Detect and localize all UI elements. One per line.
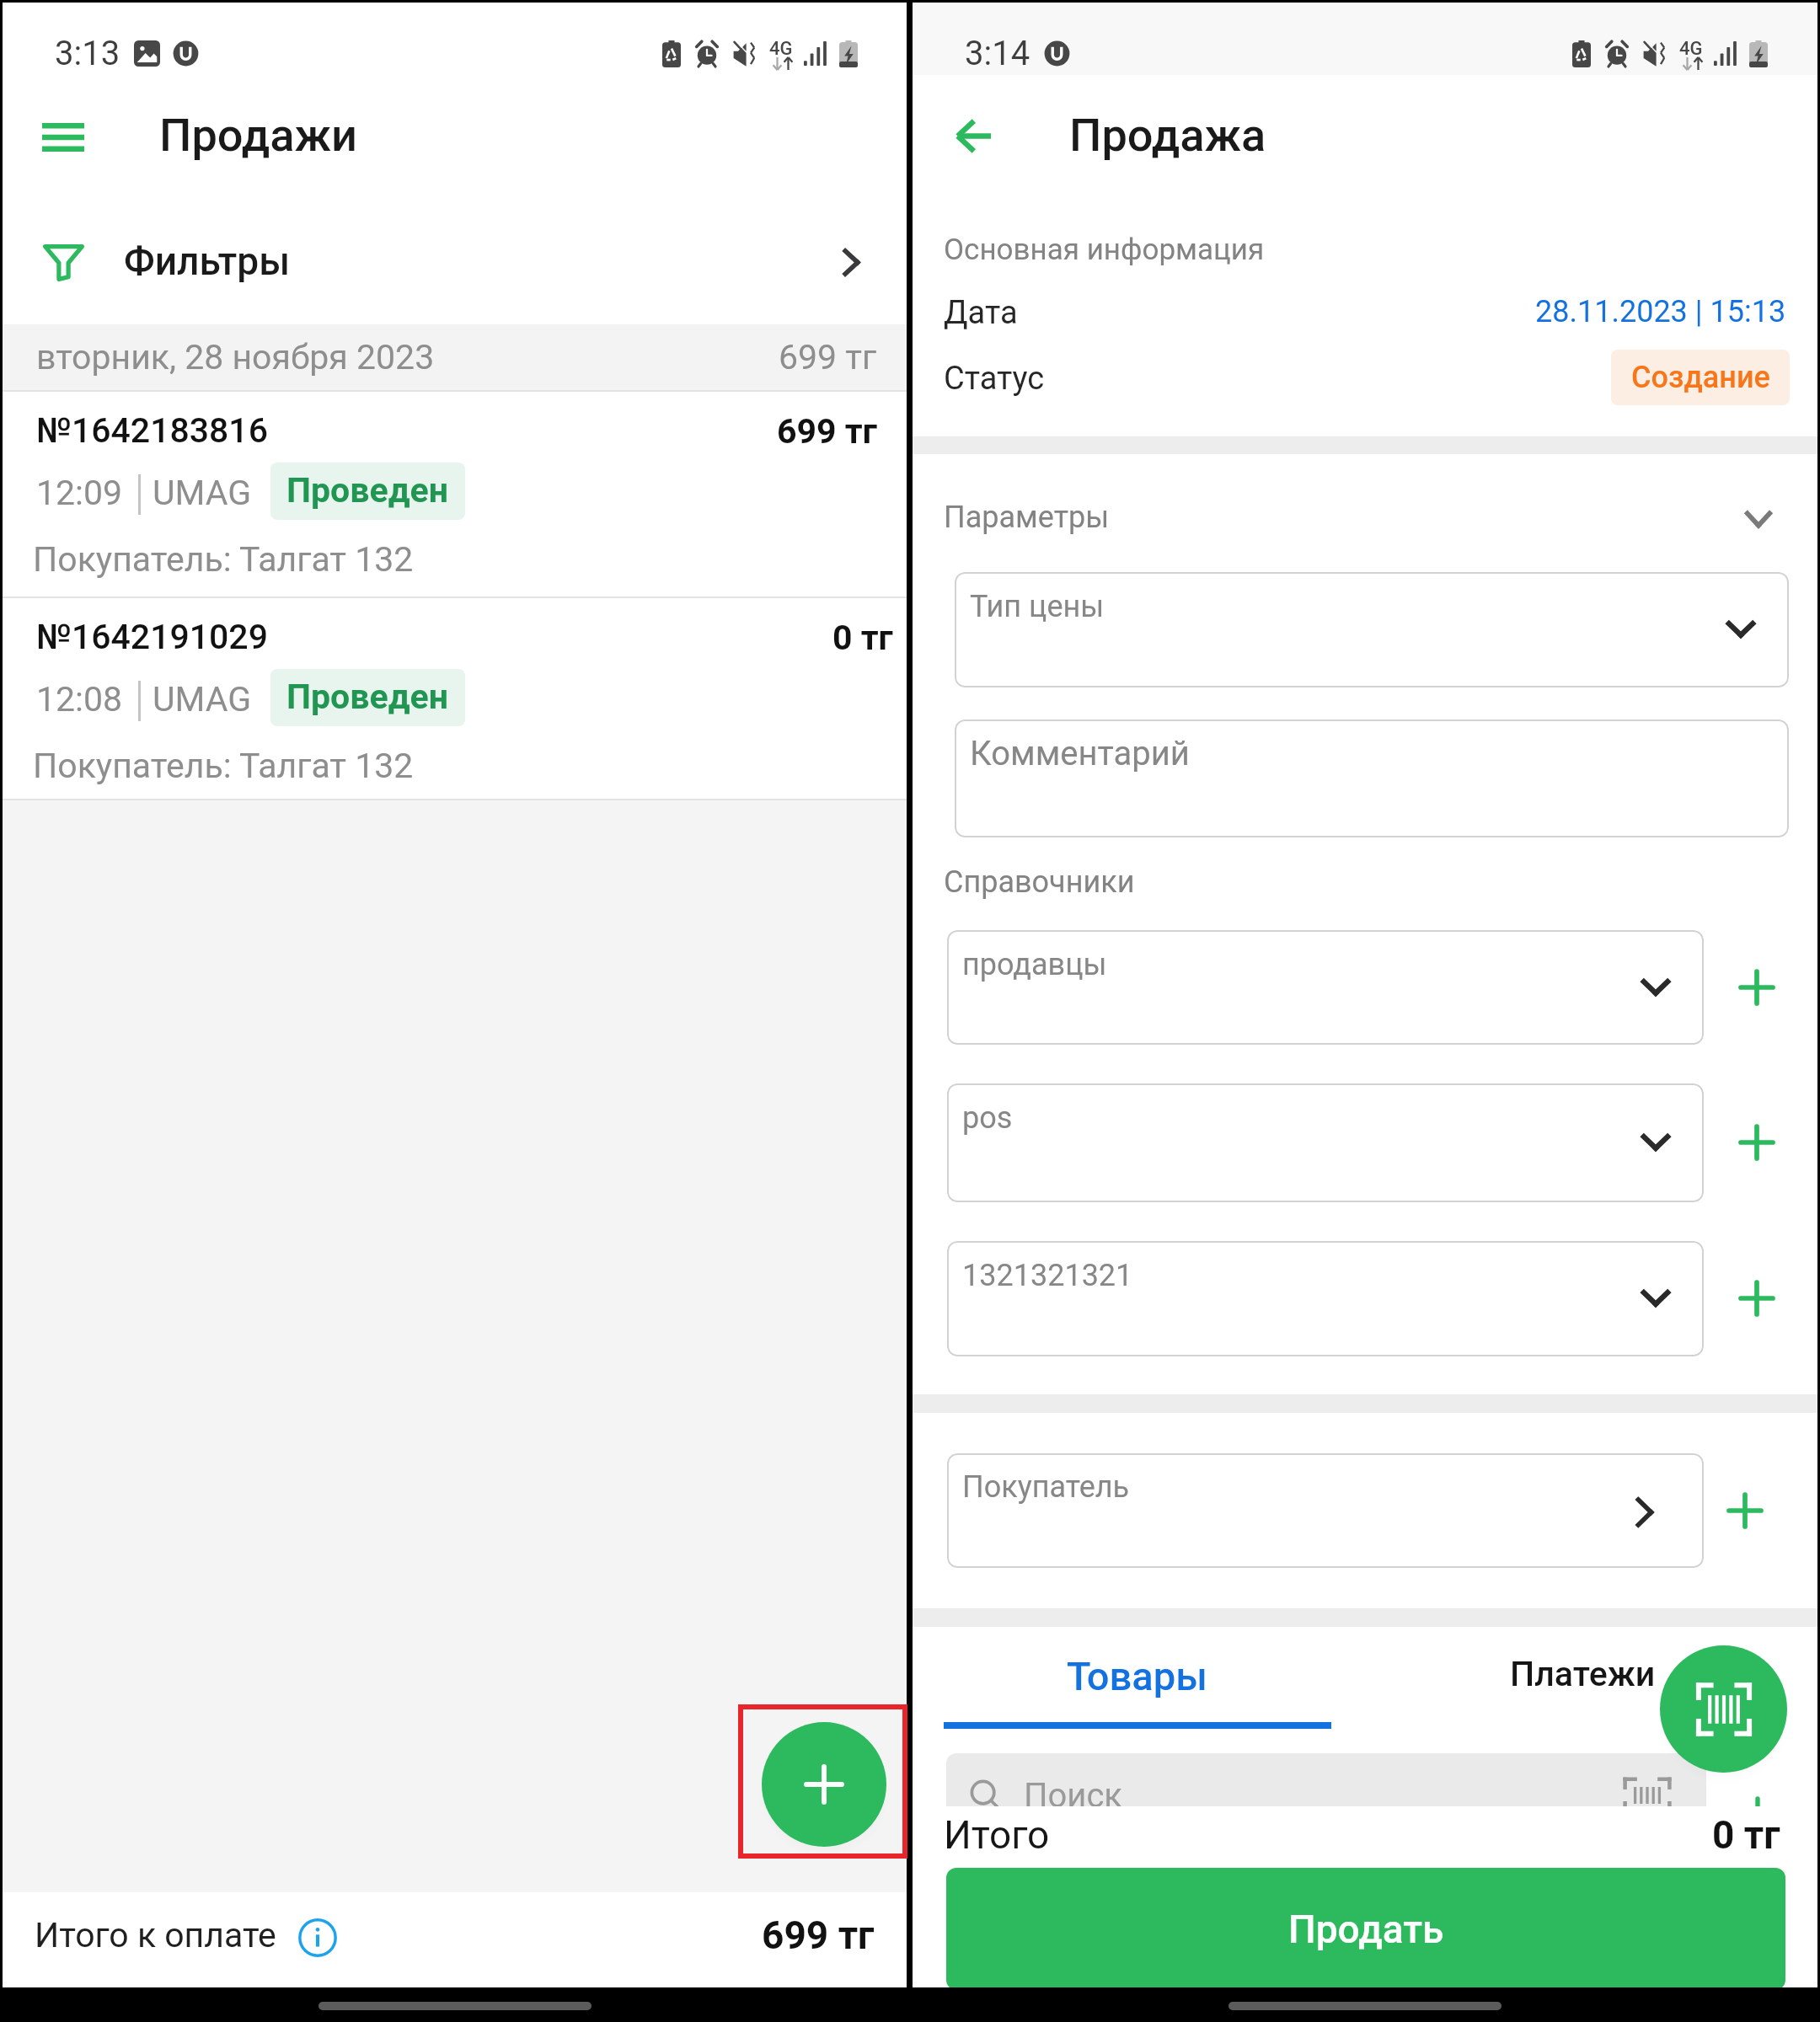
staticText: Параметры bbox=[944, 500, 1110, 535]
button[interactable]: Комментарий bbox=[955, 719, 1789, 837]
button[interactable]: Add bbox=[1737, 1278, 1777, 1319]
button[interactable]: Товары bbox=[913, 1629, 1365, 1725]
staticText: pos bbox=[962, 1100, 1013, 1136]
button[interactable]: Back bbox=[927, 89, 1020, 182]
button[interactable]: Scan barcode bbox=[1660, 1645, 1787, 1773]
staticText: Покупатель: Талгат 132 bbox=[33, 746, 414, 786]
staticText: Продажа bbox=[1069, 109, 1266, 162]
staticText: Тип цены bbox=[970, 589, 1105, 624]
button[interactable]: Menu bbox=[21, 95, 105, 179]
button[interactable]: Платежи bbox=[1365, 1629, 1817, 1725]
staticText: 699 тг bbox=[779, 337, 877, 377]
staticText: 12:08 bbox=[36, 679, 123, 719]
button[interactable]: Add bbox=[1737, 967, 1777, 1008]
staticText: UMAG bbox=[153, 473, 252, 513]
button[interactable]: Add bbox=[1725, 1490, 1765, 1531]
staticText: Поиск bbox=[1024, 1776, 1122, 1816]
staticText: UMAG bbox=[153, 679, 252, 719]
staticText: Итого bbox=[944, 1812, 1050, 1858]
staticText: 28.11.2023 | 15:13 bbox=[1535, 294, 1786, 329]
button[interactable]: Info bbox=[297, 1918, 338, 1958]
button[interactable]: pos bbox=[947, 1083, 1704, 1202]
staticText: Итого к оплате bbox=[35, 1915, 276, 1955]
staticText: Товары bbox=[1067, 1653, 1208, 1699]
staticText: 0 тг bbox=[1712, 1812, 1780, 1858]
staticText: 0 тг bbox=[832, 618, 893, 658]
staticText: №1642191029 bbox=[36, 617, 268, 657]
staticText: 699 тг bbox=[762, 1912, 875, 1958]
button[interactable]: Параметры bbox=[913, 483, 1817, 554]
button[interactable]: Тип цены bbox=[955, 572, 1789, 687]
staticText: №1642183816 bbox=[36, 410, 268, 451]
button[interactable]: Add sale bbox=[762, 1722, 886, 1847]
staticText: Статус bbox=[944, 360, 1045, 398]
staticText: Продать bbox=[1288, 1907, 1444, 1952]
staticText: Проведен bbox=[286, 470, 448, 511]
staticText: Покупатель bbox=[962, 1469, 1130, 1505]
button[interactable]: Покупатель bbox=[947, 1453, 1704, 1568]
staticText: 12:09 bbox=[36, 473, 123, 513]
staticText: 3:13 bbox=[55, 34, 120, 73]
staticText: 4G bbox=[769, 38, 803, 60]
staticText: вторник, 28 ноября 2023 bbox=[36, 337, 435, 377]
staticText: Фильтры bbox=[124, 238, 291, 284]
button[interactable]: 1321321321 bbox=[947, 1241, 1704, 1356]
staticText: Создание bbox=[1631, 360, 1770, 395]
button[interactable]: Add bbox=[1737, 1122, 1777, 1163]
staticText: 699 тг bbox=[777, 411, 877, 452]
button[interactable]: Поиск bbox=[946, 1753, 1706, 1837]
staticText: Покупатель: Талгат 132 bbox=[33, 539, 414, 580]
button[interactable]: Продать bbox=[946, 1868, 1785, 1990]
staticText: Дата bbox=[944, 294, 1018, 332]
staticText: Платежи bbox=[1510, 1654, 1656, 1694]
staticText: Проведен bbox=[286, 677, 448, 717]
button[interactable]: №1642191029 bbox=[3, 598, 907, 803]
button[interactable]: №1642183816 bbox=[3, 392, 907, 596]
staticText: 4G bbox=[1679, 38, 1713, 60]
staticText: 1321321321 bbox=[962, 1258, 1133, 1293]
staticText: Продажи bbox=[159, 109, 358, 162]
button[interactable]: продавцы bbox=[947, 930, 1704, 1045]
staticText: продавцы bbox=[962, 947, 1107, 982]
staticText: Комментарий bbox=[970, 734, 1190, 773]
staticText: 3:14 bbox=[965, 34, 1030, 73]
staticText: Основная информация bbox=[944, 233, 1265, 267]
button[interactable]: Фильтры bbox=[3, 198, 907, 323]
staticText: Справочники bbox=[944, 864, 1135, 900]
